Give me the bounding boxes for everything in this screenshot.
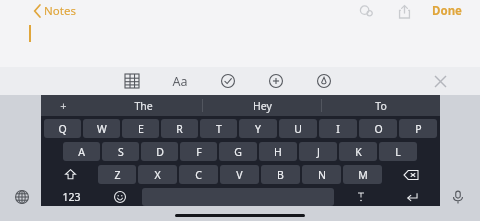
- button[interactable]: 123: [43, 188, 99, 206]
- staticText: W: [97, 122, 107, 136]
- button[interactable]: L: [379, 142, 417, 161]
- staticText: Z: [114, 168, 121, 182]
- button[interactable]: F: [180, 142, 217, 161]
- button[interactable]: Share: [392, 0, 416, 22]
- button[interactable]: E: [122, 119, 159, 138]
- button[interactable]: P: [399, 119, 437, 138]
- staticText: O: [374, 122, 383, 136]
- button[interactable]: R: [161, 119, 198, 138]
- button[interactable]: Checklist: [215, 68, 241, 94]
- staticText: A: [78, 145, 85, 159]
- button[interactable]: B: [261, 165, 300, 184]
- button[interactable]: J: [299, 142, 337, 161]
- button[interactable]: M: [343, 165, 382, 184]
- staticText: N: [318, 168, 326, 182]
- button[interactable]: Y: [239, 119, 277, 138]
- staticText: Q: [58, 122, 67, 136]
- button[interactable]: Dictate: [448, 187, 468, 207]
- staticText: L: [395, 145, 401, 159]
- staticText: S: [118, 145, 124, 159]
- staticText: T: [216, 122, 222, 136]
- staticText: E: [138, 122, 144, 136]
- staticText: R: [176, 122, 183, 136]
- button[interactable]: W: [83, 119, 120, 138]
- button[interactable]: Dictation settings: [336, 188, 385, 206]
- staticText: H: [274, 145, 282, 159]
- staticText: Notes: [44, 3, 76, 19]
- button[interactable]: I: [319, 119, 357, 138]
- staticText: Y: [255, 122, 261, 136]
- button[interactable]: Hey: [203, 95, 321, 116]
- staticText: I: [336, 122, 340, 136]
- staticText: P: [415, 122, 422, 136]
- button[interactable]: Q: [44, 119, 81, 138]
- staticText: F: [196, 145, 202, 159]
- button[interactable]: Switch language: [12, 187, 32, 207]
- button[interactable]: N: [302, 165, 341, 184]
- staticText: X: [154, 168, 161, 182]
- button[interactable]: U: [279, 119, 317, 138]
- button[interactable]: Z: [98, 165, 136, 184]
- button[interactable]: Collaborate: [354, 0, 378, 22]
- button[interactable]: A: [63, 142, 100, 161]
- button[interactable]: Backspace: [384, 165, 437, 184]
- staticText: +: [60, 98, 67, 113]
- staticText: The: [134, 99, 153, 113]
- staticText: D: [156, 145, 164, 159]
- button[interactable]: Notes: [34, 3, 76, 19]
- button[interactable]: O: [359, 119, 397, 138]
- staticText: Done: [432, 3, 462, 19]
- staticText: Aa: [172, 73, 188, 90]
- button[interactable]: Add: [41, 95, 85, 116]
- button[interactable]: Shift: [44, 165, 96, 184]
- button[interactable]: S: [102, 142, 139, 161]
- button[interactable]: Return: [385, 188, 438, 206]
- staticText: C: [195, 168, 202, 182]
- button[interactable]: K: [339, 142, 377, 161]
- staticText: To: [375, 99, 387, 113]
- staticText: G: [234, 145, 242, 159]
- staticText: 123: [62, 190, 81, 204]
- button[interactable]: To: [322, 95, 440, 116]
- button[interactable]: T: [200, 119, 237, 138]
- button[interactable]: Emoji: [99, 188, 140, 206]
- button[interactable]: H: [259, 142, 297, 161]
- staticText: J: [317, 145, 320, 159]
- button[interactable]: D: [141, 142, 178, 161]
- button[interactable]: Markup: [311, 68, 337, 94]
- button[interactable]: Aa: [167, 68, 193, 94]
- staticText: K: [355, 145, 362, 159]
- button[interactable]: G: [219, 142, 257, 161]
- staticText: Hey: [253, 99, 272, 113]
- button[interactable]: C: [179, 165, 218, 184]
- staticText: U: [294, 122, 302, 136]
- staticText: M: [358, 168, 368, 182]
- staticText: V: [236, 168, 243, 182]
- button[interactable]: Add attachment: [263, 68, 289, 94]
- button[interactable]: Close keyboard: [428, 69, 452, 93]
- button[interactable]: X: [138, 165, 177, 184]
- button[interactable]: Table: [119, 68, 145, 94]
- button[interactable]: The: [85, 95, 202, 116]
- button[interactable]: Done: [430, 0, 464, 22]
- staticText: B: [277, 168, 284, 182]
- button[interactable]: V: [220, 165, 259, 184]
